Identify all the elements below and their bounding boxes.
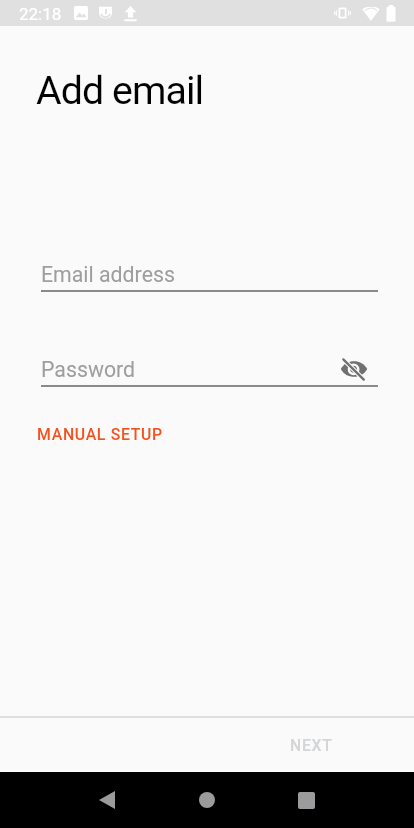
button[interactable]: Show password [333, 348, 375, 390]
button[interactable]: Email address [41, 254, 378, 292]
staticText: Password [41, 357, 136, 382]
button[interactable]: Back [83, 776, 131, 824]
button[interactable]: Password [41, 349, 378, 387]
staticText: MANUAL SETUP [37, 425, 163, 444]
button[interactable]: Recent apps [282, 776, 330, 824]
staticText: Add email [36, 68, 204, 114]
button[interactable]: NEXT [274, 724, 349, 766]
staticText: Email address [41, 262, 175, 287]
button[interactable]: Home [183, 776, 231, 824]
button[interactable]: MANUAL SETUP [25, 418, 175, 451]
staticText: NEXT [290, 736, 333, 754]
staticText: 22:18 [19, 4, 62, 24]
